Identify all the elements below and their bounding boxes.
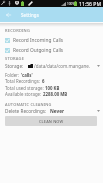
staticText: Total Recordings: [5,78,42,84]
staticText: Total used storage: [5,85,45,91]
button[interactable]: Delete Recordings: [0,107,103,115]
button[interactable]: Record Incoming Calls [0,35,103,45]
staticText: 'calls' [21,72,33,78]
button[interactable]: Record Outgoing Calls [0,45,103,55]
staticText: Storage: [5,63,24,69]
staticText: 6 [42,78,45,84]
staticText: CLEAN NOW [39,119,64,124]
button[interactable]: Back [3,10,13,20]
staticText: 100% [67,2,75,6]
staticText: Record Outgoing Calls [13,47,64,54]
staticText: 100 KB [45,85,60,91]
staticText: /data/data/com.mangane. [34,63,91,69]
staticText: Never [50,108,65,114]
button[interactable]: CLEAN NOW [5,116,97,126]
staticText: STORAGE [5,56,25,61]
staticText: RECORDING [5,28,31,33]
staticText: Delete Recordings: [5,108,47,114]
staticText: Folder: [5,72,21,78]
staticText: Settings [21,12,39,18]
staticText: Available storage: [5,91,43,97]
staticText: 11:56 PM [79,1,102,8]
staticText: AUTOMATIC CLEANING [5,102,52,107]
staticText: Record Incoming Calls [13,37,64,44]
button[interactable]: Storage: [0,62,103,70]
staticText: 2288.00 MB [43,91,68,97]
